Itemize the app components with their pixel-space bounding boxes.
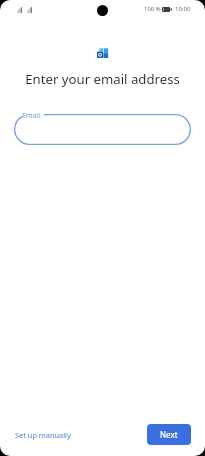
staticText: Next <box>160 429 178 440</box>
staticText: 10:00 <box>175 5 191 13</box>
staticText: 100 % <box>144 5 161 13</box>
other: Mobile signal strength <box>17 7 32 13</box>
staticText: Enter your email address <box>0 70 205 88</box>
staticText: Set up manually <box>15 430 71 440</box>
button[interactable]: Set up manually <box>9 425 77 445</box>
other: Battery full <box>162 7 172 12</box>
staticText: Email <box>22 111 40 121</box>
button[interactable]: Email <box>14 114 191 145</box>
button[interactable]: Next <box>147 424 191 445</box>
other: Outlook <box>97 48 109 58</box>
